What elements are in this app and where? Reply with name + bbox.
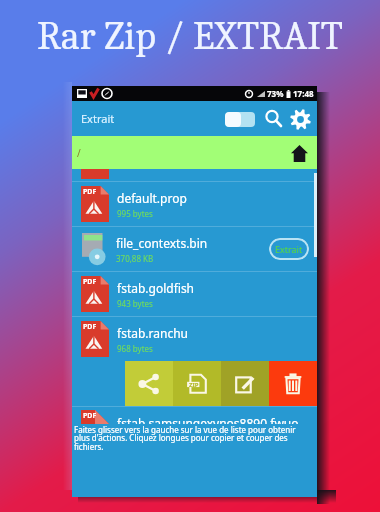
staticText: PDF bbox=[83, 411, 97, 421]
button[interactable]: PDF bbox=[72, 317, 317, 361]
staticText: fstab.ranchu bbox=[117, 325, 188, 341]
button[interactable]: Extrait bbox=[269, 238, 309, 260]
staticText: Faites glisser vers la gauche sur la vue… bbox=[74, 424, 308, 452]
staticText: Rar Zip / EXTRAIT bbox=[37, 13, 343, 59]
button[interactable]: PDF bbox=[72, 182, 317, 226]
staticText: 943 bytes bbox=[117, 298, 153, 309]
staticText: fstab.samsungexynos8890.fwuo bbox=[117, 415, 299, 431]
staticText: PDF bbox=[83, 277, 97, 287]
staticText: PDF bbox=[83, 322, 97, 332]
staticText: 995 bytes bbox=[117, 208, 153, 219]
button[interactable]: Toggle select mode bbox=[225, 112, 255, 127]
staticText: 370,88 KB bbox=[116, 253, 154, 264]
staticText: fstab.goldfish bbox=[117, 280, 195, 296]
staticText: file_contexts.bin bbox=[116, 235, 208, 251]
button[interactable]: Share bbox=[125, 361, 173, 406]
staticText: Extrait bbox=[81, 111, 115, 126]
button[interactable]: Delete bbox=[269, 361, 317, 406]
button[interactable]: Rename bbox=[221, 361, 269, 406]
staticText: 17:48 bbox=[293, 88, 314, 99]
button[interactable]: Search bbox=[263, 108, 285, 130]
button[interactable]: file_contexts.bin bbox=[72, 227, 317, 271]
button[interactable]: Home bbox=[289, 143, 309, 163]
staticText: 968 bytes bbox=[117, 343, 153, 354]
staticText: ZIP bbox=[189, 381, 199, 389]
button[interactable]: Settings bbox=[288, 107, 312, 131]
staticText: / bbox=[77, 146, 81, 160]
button[interactable]: / bbox=[72, 136, 317, 169]
staticText: 73% bbox=[267, 88, 284, 99]
button[interactable]: PDF bbox=[72, 272, 317, 316]
staticText: Extrait bbox=[275, 243, 303, 255]
button[interactable]: Compress to zip bbox=[173, 361, 221, 406]
staticText: PDF bbox=[83, 187, 97, 197]
staticText: default.prop bbox=[117, 190, 187, 206]
